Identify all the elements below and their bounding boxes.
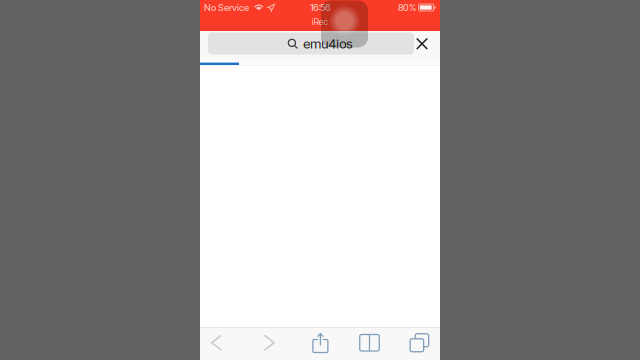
staticText: 80%: [398, 2, 416, 13]
button[interactable]: Tabs: [403, 326, 436, 359]
staticText: No Service: [204, 2, 249, 13]
button[interactable]: Bookmarks: [353, 326, 386, 359]
button[interactable]: Share: [304, 326, 337, 359]
staticText: 16:56: [310, 2, 330, 13]
button[interactable]: Address and search: [208, 29, 414, 57]
staticText: iRec: [311, 16, 328, 27]
button[interactable]: Forward: [253, 326, 286, 359]
button[interactable]: Back: [200, 326, 233, 359]
staticText: emu4ios: [303, 36, 352, 52]
button[interactable]: Stop loading: [409, 31, 435, 57]
